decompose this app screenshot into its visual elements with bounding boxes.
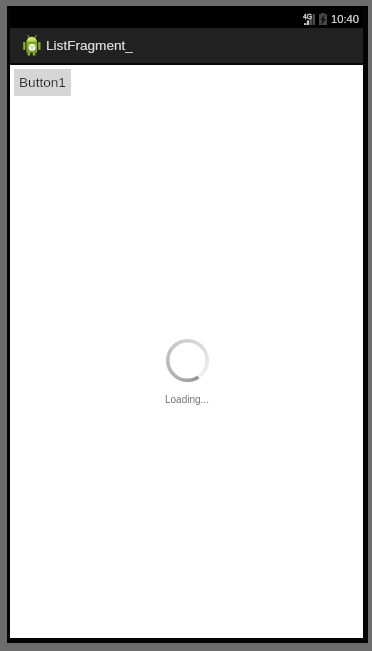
staticText: ListFragment_ xyxy=(46,38,133,53)
button[interactable]: ListFragment_, navigate up xyxy=(18,28,142,63)
staticText: 10:40 xyxy=(331,13,359,26)
staticText: Button1 xyxy=(19,75,66,90)
button[interactable]: Button1 xyxy=(14,69,71,96)
staticText: Loading... xyxy=(165,394,209,405)
staticText: 4G xyxy=(303,13,313,21)
